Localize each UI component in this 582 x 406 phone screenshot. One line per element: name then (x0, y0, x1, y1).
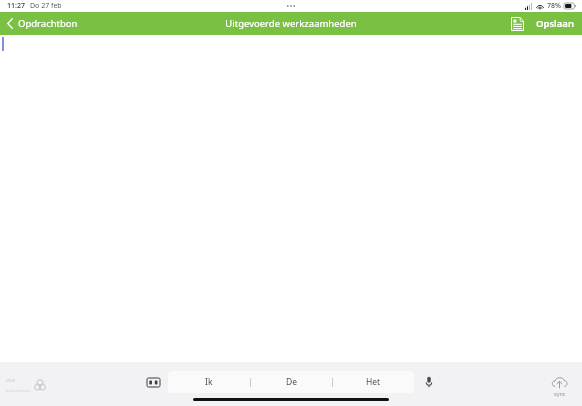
button[interactable]: Toetsenbordindeling (138, 371, 168, 393)
button[interactable]: Ik (168, 371, 250, 393)
button[interactable]: sync (545, 373, 574, 400)
button[interactable]: Dicteren (414, 371, 444, 393)
staticText: crux (6, 377, 16, 383)
staticText: Do 27 feb (30, 1, 62, 11)
button[interactable]: Opslaan (530, 12, 582, 35)
staticText: Ik (205, 376, 213, 388)
staticText: 11:27 (7, 1, 25, 11)
button[interactable]: Formulier (505, 12, 530, 35)
staticText: 78% (547, 1, 561, 11)
button[interactable]: Het (333, 371, 414, 393)
staticText: Het (366, 376, 381, 388)
staticText: sync (554, 390, 566, 397)
staticText: Uitgevoerde werkzaamheden (225, 17, 357, 30)
staticText: De (286, 376, 297, 388)
button[interactable]: Opdrachtbon (0, 12, 88, 35)
staticText: Opslaan (536, 17, 574, 30)
staticText: bouw software (6, 388, 31, 393)
staticText: Opdrachtbon (18, 17, 78, 30)
button[interactable]: De (251, 371, 332, 393)
